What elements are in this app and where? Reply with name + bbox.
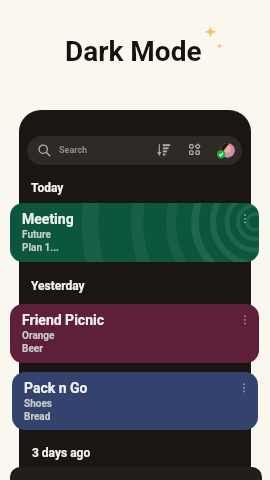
- staticText: Shoes: [24, 398, 52, 410]
- staticText: Search: [59, 145, 88, 156]
- button[interactable]: More options: [239, 211, 251, 223]
- button[interactable]: Meeting: [10, 203, 259, 262]
- staticText: Beer: [22, 343, 43, 355]
- staticText: Pack n Go: [24, 380, 88, 396]
- staticText: Friend Picnic: [22, 312, 104, 328]
- button[interactable]: Grid view: [189, 144, 200, 155]
- staticText: Future: [22, 229, 51, 241]
- staticText: Meeting: [22, 211, 74, 227]
- staticText: Bread: [24, 411, 51, 423]
- button[interactable]: Sort: [157, 143, 171, 157]
- button[interactable]: Search: [27, 136, 242, 165]
- button[interactable]: More options: [238, 380, 250, 392]
- staticText: 3 days ago: [32, 446, 91, 460]
- button[interactable]: More options: [239, 312, 251, 324]
- staticText: Dark Mode: [65, 35, 202, 68]
- button[interactable]: Profile: [216, 141, 235, 160]
- staticText: Orange: [22, 330, 55, 342]
- button[interactable]: Pack n Go: [12, 372, 258, 430]
- button[interactable]: Friend Picnic: [10, 304, 259, 363]
- staticText: Today: [31, 181, 64, 195]
- staticText: Plan 1...: [22, 242, 59, 254]
- staticText: Yesterday: [31, 279, 85, 293]
